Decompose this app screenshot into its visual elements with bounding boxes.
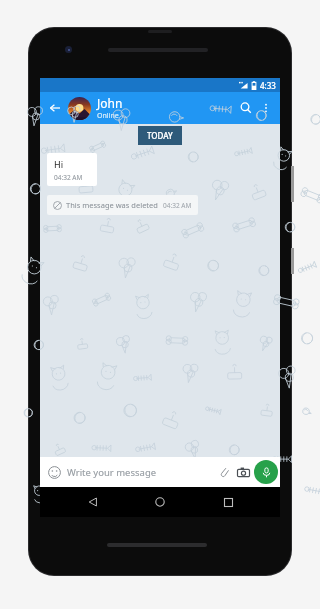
button[interactable]: Record voice message (254, 460, 278, 484)
button[interactable]: Emoji (45, 463, 63, 481)
staticText: Hi (54, 158, 64, 170)
button[interactable]: Attach file (215, 463, 233, 481)
staticText: Online (97, 111, 119, 121)
staticText: 04:32 AM (163, 201, 192, 210)
button[interactable]: Camera (233, 462, 253, 482)
button[interactable]: Hi (47, 153, 97, 186)
staticText: 4:33 (260, 80, 276, 91)
button[interactable]: Back (78, 487, 108, 517)
staticText: 04:32 AM (54, 173, 83, 182)
button[interactable]: More options (257, 99, 275, 117)
staticText: TODAY (147, 130, 173, 141)
button[interactable]: Recent apps (213, 487, 243, 517)
staticText: This message was deleted (66, 200, 158, 210)
button[interactable]: This message was deleted (47, 195, 198, 215)
staticText: Write your message (67, 466, 157, 479)
button[interactable]: Back (45, 98, 65, 118)
button[interactable]: Profile photo (68, 97, 91, 120)
button[interactable]: Home (145, 487, 175, 517)
staticText: John (97, 95, 123, 111)
button[interactable]: Write your message (67, 466, 215, 479)
button[interactable]: Search (235, 97, 257, 119)
